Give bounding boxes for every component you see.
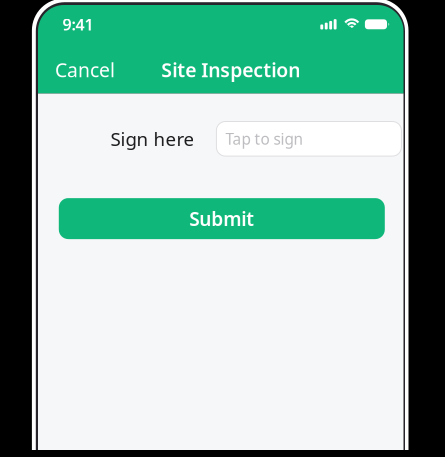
staticText: Cancel bbox=[55, 57, 115, 83]
staticText: 9:41 bbox=[62, 13, 93, 35]
button[interactable]: Submit bbox=[59, 198, 385, 239]
button[interactable]: Cancel bbox=[38, 46, 132, 93]
button[interactable]: Tap to sign bbox=[216, 121, 401, 156]
staticText: Submit bbox=[189, 206, 254, 232]
staticText: Tap to sign bbox=[225, 128, 302, 149]
staticText: Site Inspection bbox=[161, 57, 300, 83]
staticText: Sign here bbox=[110, 126, 194, 151]
